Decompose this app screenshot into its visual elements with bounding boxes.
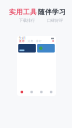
button[interactable]: Tab bbox=[46, 89, 56, 95]
staticText: 9:41 bbox=[19, 37, 26, 40]
button[interactable]: Home tab bbox=[17, 89, 27, 95]
staticText: 推荐 bbox=[19, 39, 25, 43]
staticText: 排行 bbox=[36, 39, 42, 43]
staticText: 实用工具 bbox=[9, 8, 37, 16]
staticText: 下载排行 bbox=[19, 18, 35, 23]
button[interactable]: Tab bbox=[36, 89, 46, 95]
staticText: 口碑好评 bbox=[47, 18, 63, 23]
staticText: 随伴学习 bbox=[38, 8, 66, 16]
button[interactable]: Tab bbox=[27, 89, 37, 95]
staticText: 分类 bbox=[27, 39, 33, 43]
